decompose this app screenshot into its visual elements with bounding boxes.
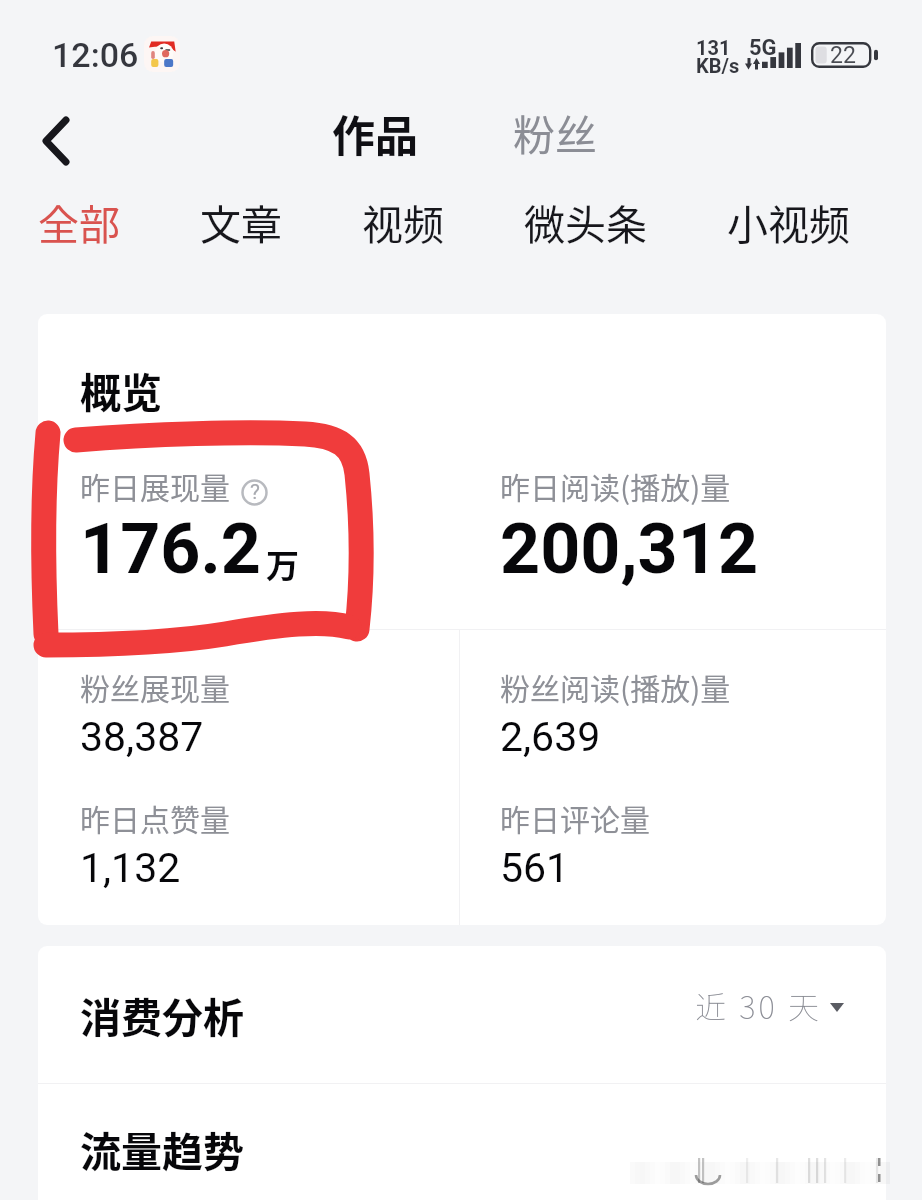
staticText: 万 bbox=[266, 540, 299, 588]
button[interactable]: Back bbox=[20, 105, 92, 177]
staticText: 视频 bbox=[362, 192, 444, 251]
button[interactable]: 全部 bbox=[0, 186, 160, 257]
staticText: 消费分析 bbox=[80, 985, 244, 1044]
staticText: ? bbox=[250, 480, 260, 505]
staticText: 粉丝阅读(播放)量 bbox=[500, 665, 731, 708]
button[interactable]: 消费分析 bbox=[38, 946, 886, 1083]
staticText: 昨日展现量 bbox=[80, 464, 230, 507]
button[interactable]: 小视频 bbox=[687, 186, 890, 257]
staticText: 文章 bbox=[200, 192, 282, 251]
staticText: 12:06 bbox=[52, 35, 139, 75]
staticText: 5G bbox=[749, 35, 777, 61]
staticText: 200,312 bbox=[500, 508, 759, 590]
staticText: 流量趋势 bbox=[80, 1119, 244, 1178]
staticText: 概览 bbox=[80, 360, 162, 419]
staticText: 作品 bbox=[332, 102, 418, 164]
staticText: 全部 bbox=[38, 192, 120, 251]
staticText: 22 bbox=[830, 42, 856, 68]
staticText: 561 bbox=[500, 844, 570, 892]
staticText: 昨日评论量 bbox=[500, 796, 650, 839]
staticText: 昨日阅读(播放)量 bbox=[500, 464, 731, 507]
staticText: 粉丝展现量 bbox=[80, 665, 230, 708]
staticText: 昨日点赞量 bbox=[80, 796, 230, 839]
staticText: 粉丝 bbox=[513, 102, 598, 163]
staticText: 176.2 bbox=[80, 508, 262, 590]
staticText: KB/s bbox=[696, 54, 740, 77]
staticText: 微头条 bbox=[524, 192, 647, 251]
staticText: 38,387 bbox=[80, 713, 204, 761]
button[interactable]: 粉丝 bbox=[497, 94, 614, 171]
staticText: 1,132 bbox=[80, 844, 181, 892]
staticText: 小视频 bbox=[727, 192, 850, 251]
button[interactable]: 视频 bbox=[322, 186, 484, 257]
button[interactable]: 近 30 天 bbox=[695, 992, 844, 1037]
staticText: 2,639 bbox=[500, 713, 601, 761]
button[interactable]: 作品 bbox=[316, 94, 434, 172]
button[interactable]: 流量趋势 bbox=[38, 1084, 886, 1200]
button[interactable]: Help bbox=[241, 479, 268, 506]
button[interactable]: 微头条 bbox=[484, 186, 687, 257]
button[interactable]: 文章 bbox=[160, 186, 322, 257]
staticText: 131 bbox=[696, 36, 731, 59]
staticText: 近 30 天 bbox=[695, 983, 823, 1028]
